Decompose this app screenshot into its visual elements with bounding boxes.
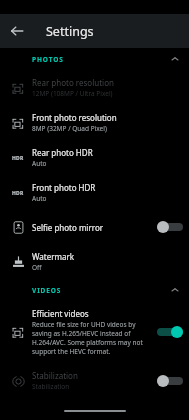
staticText: PHOTOS <box>32 55 64 64</box>
button[interactable]: Watermark <box>0 244 189 279</box>
staticText: Selfie photo mirror <box>32 222 104 233</box>
staticText: Rear photo HDR <box>32 147 93 158</box>
button[interactable]: Toggle off <box>157 219 183 235</box>
staticText: HDR <box>12 190 24 197</box>
staticText: 12MP (108MP / Ultra Pixel) <box>32 89 113 98</box>
staticText: Auto <box>32 194 47 203</box>
button[interactable]: Toggle on <box>157 324 183 340</box>
staticText: Stabilization <box>32 370 78 381</box>
staticText: 8MP (32MP / Quad Pixel) <box>32 124 107 133</box>
staticText: Off <box>32 263 42 272</box>
button[interactable]: Back <box>0 14 34 48</box>
button[interactable]: Toggle off <box>157 373 183 389</box>
staticText: Front photo resolution <box>32 112 117 123</box>
button[interactable]: Selfie photo mirror <box>0 210 189 244</box>
staticText: Auto <box>32 159 47 168</box>
staticText: Rear photo resolution <box>32 77 114 88</box>
button[interactable]: Rear photo resolution <box>0 70 189 105</box>
staticText: Settings <box>46 23 94 40</box>
staticText: Front photo HDR <box>32 182 96 193</box>
staticText: Efficient videos <box>32 308 89 319</box>
staticText: HDR <box>12 155 24 162</box>
staticText: Watermark <box>32 251 75 262</box>
button[interactable]: Stabilization <box>0 363 189 398</box>
button[interactable]: VIDEOS <box>0 279 189 301</box>
staticText: Stabilization <box>32 382 70 391</box>
button[interactable]: Front photo resolution <box>0 105 189 140</box>
button[interactable]: HDR <box>0 175 189 210</box>
staticText: VIDEOS <box>32 286 62 295</box>
button[interactable]: PHOTOS <box>0 48 189 70</box>
button[interactable]: HDR <box>0 140 189 175</box>
button[interactable]: Efficient videos <box>0 301 189 363</box>
staticText: Reduce file size for UHD videos by savin… <box>32 320 151 356</box>
